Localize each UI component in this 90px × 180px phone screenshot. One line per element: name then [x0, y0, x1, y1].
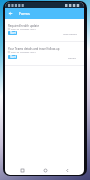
staticText: Required health update — [8, 24, 39, 28]
button[interactable]: Back — [62, 165, 72, 175]
staticText: Due 22 October 2021 — [11, 27, 36, 30]
button[interactable]: View details — [63, 32, 77, 35]
button[interactable]: Details — [68, 56, 77, 59]
button[interactable]: Home — [40, 165, 50, 175]
staticText: Details — [68, 56, 77, 59]
button[interactable]: Recent apps — [17, 165, 27, 175]
staticText: Your Teams details and travel follow-up — [8, 47, 60, 51]
staticText: View details — [63, 32, 77, 35]
staticText: Forms — [19, 11, 30, 16]
staticText: Due 30 October 2021 — [11, 50, 36, 53]
button[interactable]: Start — [8, 31, 17, 35]
staticText: Start — [10, 31, 16, 35]
button[interactable]: Back — [6, 8, 15, 19]
staticText: Start — [10, 55, 16, 59]
button[interactable]: Start — [8, 55, 17, 59]
